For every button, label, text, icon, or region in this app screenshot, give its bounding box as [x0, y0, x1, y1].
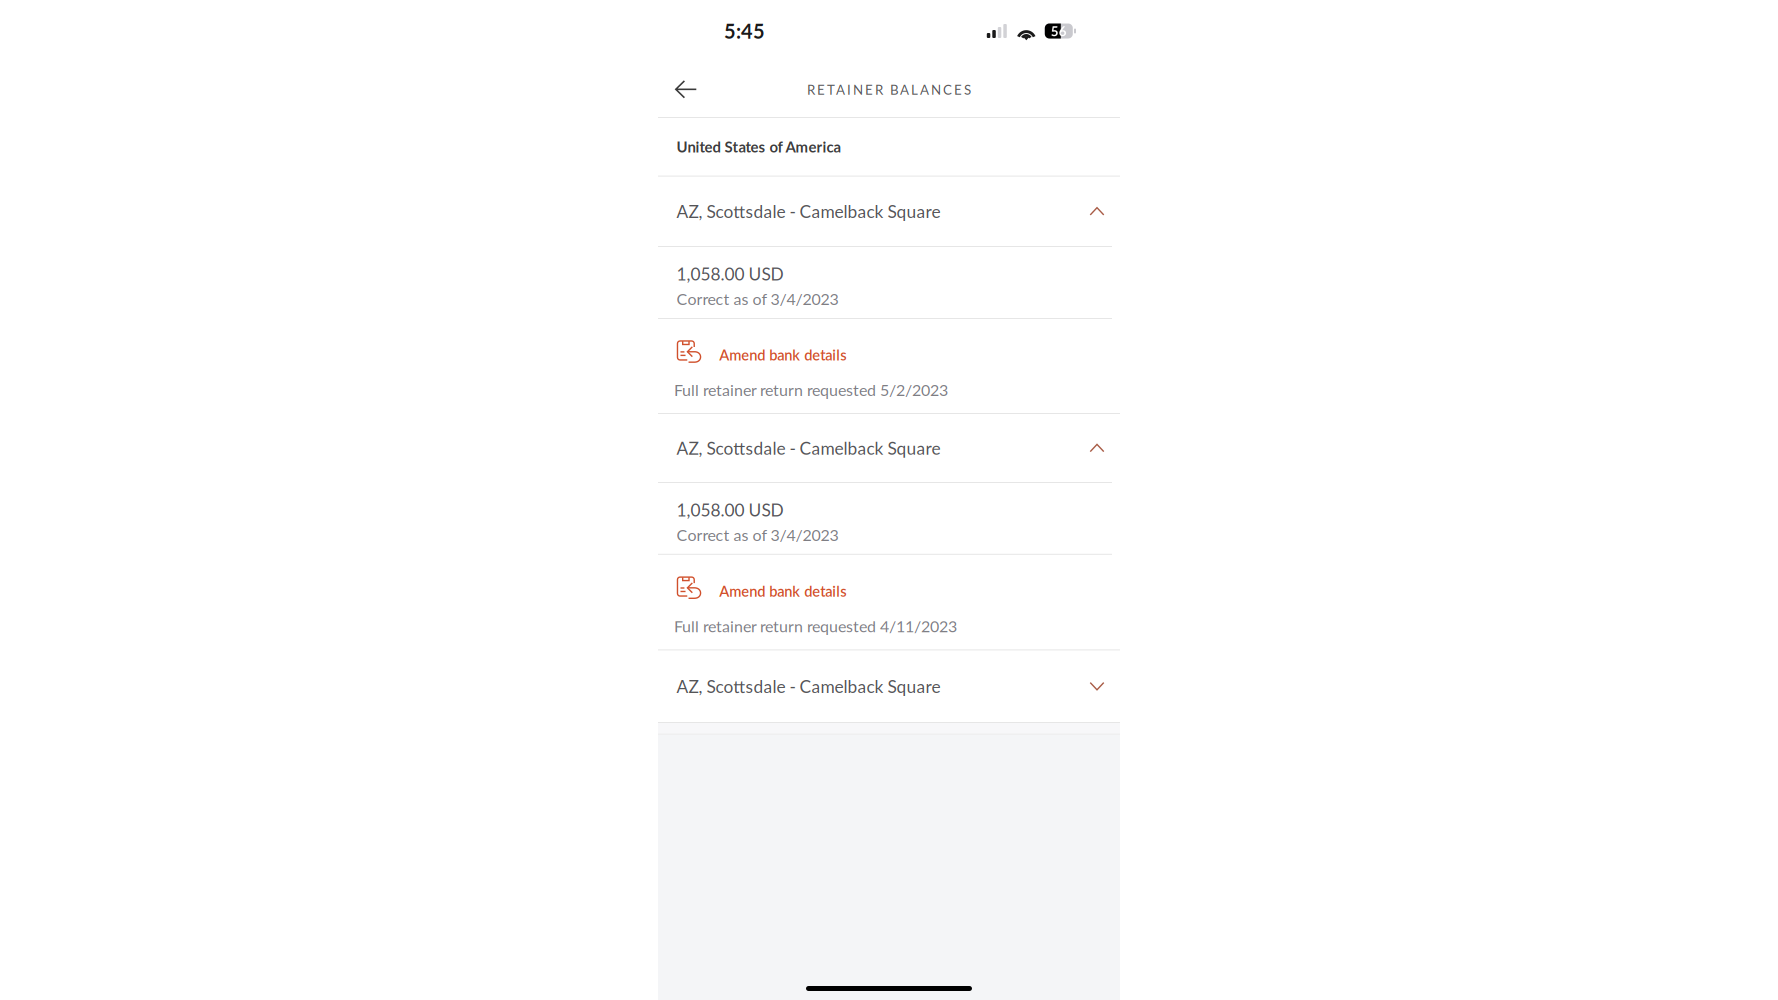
staticText: Full retainer return requested 5/2/2023 [674, 380, 948, 399]
staticText: United States of America [676, 138, 841, 156]
staticText: Amend bank details [719, 346, 846, 364]
staticText: AZ, Scottsdale - Camelback Square [676, 676, 940, 697]
staticText: 56 [1051, 23, 1067, 39]
staticText: 5:45 [724, 19, 765, 43]
button[interactable]: Amend bank details [674, 337, 846, 372]
staticText: AZ, Scottsdale - Camelback Square [676, 438, 940, 458]
button[interactable]: AZ, Scottsdale - Camelback Square [658, 650, 1120, 722]
button[interactable]: AZ, Scottsdale - Camelback Square [658, 177, 1120, 246]
button[interactable]: Amend bank details [674, 574, 846, 608]
staticText: Correct as of 3/4/2023 [676, 289, 838, 308]
staticText: Full retainer return requested 4/11/2023 [674, 616, 957, 636]
button[interactable]: AZ, Scottsdale - Camelback Square [658, 414, 1120, 482]
staticText: 1,058.00 USD [676, 263, 783, 284]
staticText: 1,058.00 USD [676, 499, 783, 520]
button[interactable]: Back [667, 71, 705, 108]
staticText: AZ, Scottsdale - Camelback Square [676, 201, 940, 222]
staticText: RETAINER BALANCES [807, 81, 971, 97]
staticText: Amend bank details [719, 582, 846, 600]
staticText: Correct as of 3/4/2023 [676, 525, 838, 544]
